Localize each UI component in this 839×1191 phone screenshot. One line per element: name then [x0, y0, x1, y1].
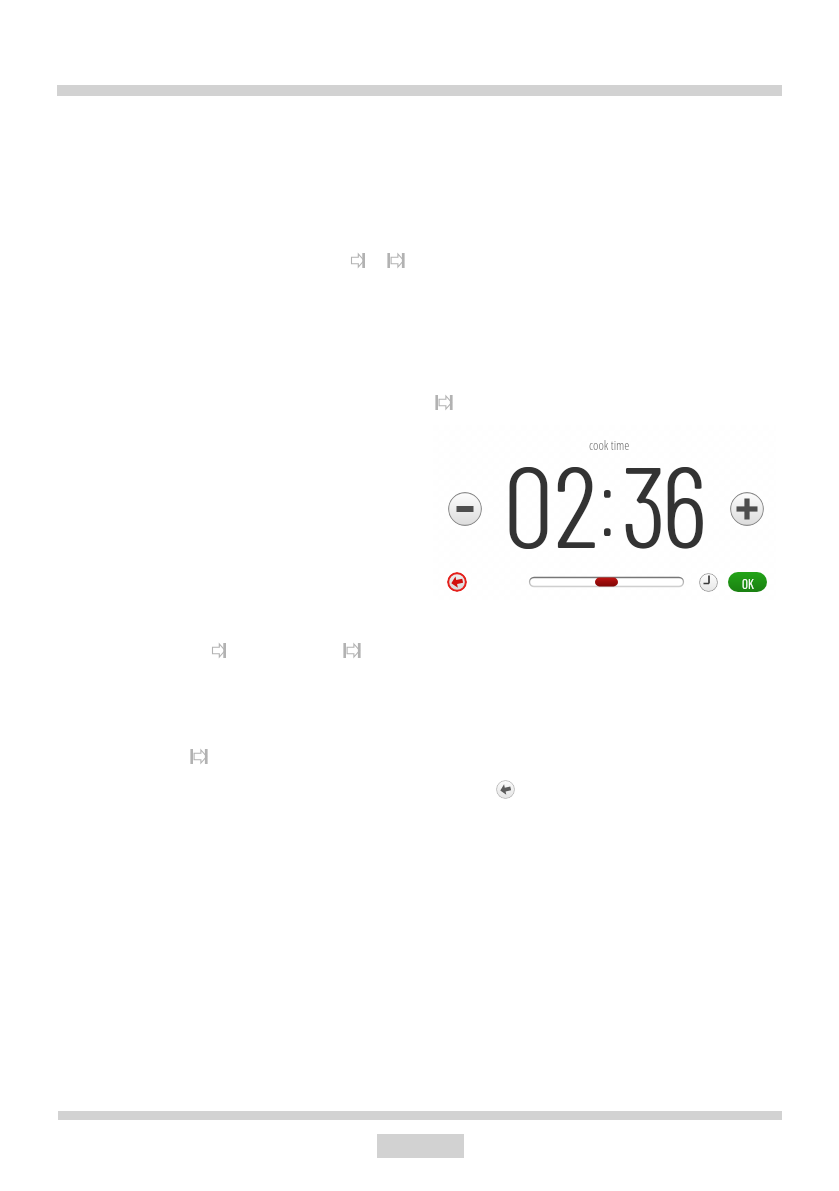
button[interactable]: Back [496, 780, 515, 799]
button[interactable]: Set clock [699, 573, 718, 592]
staticText: OK [742, 576, 754, 592]
staticText: 3 [622, 435, 668, 571]
button[interactable]: Back [447, 572, 467, 592]
button[interactable]: Time slider [529, 577, 684, 587]
button[interactable]: OK [728, 572, 767, 592]
staticText: cook time [589, 436, 630, 454]
button[interactable]: Decrease time [448, 492, 482, 526]
staticText: 02 [503, 435, 598, 571]
staticText: 6 [661, 435, 707, 571]
button[interactable]: Increase time [730, 492, 764, 526]
staticText: 02 [504, 435, 599, 571]
staticText: 6 [662, 435, 708, 571]
staticText: 3 [621, 435, 667, 571]
